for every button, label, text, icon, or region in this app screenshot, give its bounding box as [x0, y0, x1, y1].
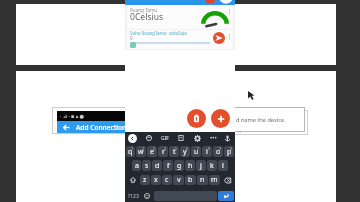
button[interactable]: o: [213, 146, 223, 157]
button[interactable]: Voice input: [222, 132, 232, 144]
staticText: y: [183, 147, 187, 157]
staticText: 2: [142, 146, 145, 151]
staticText: z: [143, 175, 147, 185]
button[interactable]: Temperature: [130, 42, 136, 48]
staticText: w: [138, 147, 144, 157]
staticText: e: [150, 147, 154, 157]
staticText: 9: [219, 146, 222, 151]
button[interactable]: x: [151, 175, 161, 185]
staticText: t: [173, 147, 176, 157]
staticText: 4: [164, 146, 167, 151]
button[interactable]: Shift: [126, 175, 139, 185]
staticText: 0Celsius: [130, 11, 164, 23]
staticText: 1: [131, 146, 134, 151]
button[interactable]: c: [162, 175, 172, 185]
button[interactable]: [189, 132, 205, 144]
staticText: v: [177, 175, 181, 185]
button[interactable]: k: [207, 160, 217, 171]
staticText: 0: [230, 146, 233, 151]
staticText: m: [211, 175, 218, 185]
button[interactable]: •••: [205, 132, 221, 144]
button[interactable]: GIF: [157, 132, 173, 144]
button[interactable]: z: [140, 175, 150, 185]
staticText: ⋅ ⊿ · ▪ ▴ ●: [60, 113, 84, 120]
staticText: ?123: [128, 193, 139, 200]
staticText: ..: [238, 127, 242, 135]
staticText: c: [165, 175, 169, 185]
other: Back: [63, 124, 70, 131]
staticText: Add Connection: [76, 123, 127, 132]
button[interactable]: Send: [213, 32, 225, 44]
staticText: k: [210, 161, 214, 171]
staticText: x: [154, 175, 158, 185]
staticText: u: [194, 147, 199, 157]
staticText: 3: [153, 146, 156, 151]
staticText: b: [188, 175, 193, 185]
button[interactable]: More options: [227, 7, 232, 16]
button[interactable]: [141, 132, 157, 144]
staticText: 7: [197, 146, 200, 151]
staticText: f: [167, 161, 170, 171]
staticText: j: [200, 161, 202, 171]
button[interactable]: h: [185, 160, 195, 171]
button[interactable]: q: [126, 146, 135, 157]
button[interactable]: y: [180, 146, 190, 157]
staticText: q: [128, 147, 133, 157]
button[interactable]: f: [163, 160, 173, 171]
staticText: o: [216, 147, 221, 157]
button[interactable]: i: [202, 146, 212, 157]
button[interactable]: b: [185, 175, 196, 185]
button[interactable]: Emoji: [141, 191, 153, 201]
staticText: s: [145, 161, 149, 171]
staticText: Suhu RuangTamu sukaSaja: [130, 30, 187, 36]
button[interactable]: e: [147, 146, 157, 157]
staticText: i: [206, 147, 208, 157]
button[interactable]: w: [136, 146, 146, 157]
staticText: g: [177, 161, 182, 171]
button[interactable]: More options: [227, 32, 232, 41]
button[interactable]: Delete: [187, 109, 206, 128]
button[interactable]: ?123: [126, 191, 140, 201]
button[interactable]: g: [174, 160, 184, 171]
button[interactable]: Back: [128, 134, 137, 143]
button[interactable]: s: [142, 160, 151, 171]
staticText: p: [227, 147, 232, 157]
button[interactable]: j: [196, 160, 206, 171]
button[interactable]: Backspace: [221, 175, 234, 185]
staticText: Ruang Tamu: [130, 7, 158, 13]
button[interactable]: l: [218, 160, 228, 171]
button[interactable]: Enter: [218, 191, 234, 201]
staticText: r: [162, 147, 165, 157]
button[interactable]: d: [152, 160, 162, 171]
staticText: d: [155, 161, 160, 171]
button[interactable]: [173, 132, 189, 144]
button[interactable]: m: [209, 175, 220, 185]
staticText: d name the device.: [236, 116, 286, 124]
button[interactable]: r: [158, 146, 168, 157]
staticText: n: [200, 175, 205, 185]
staticText: 0: [130, 35, 133, 41]
staticText: 6: [186, 146, 189, 151]
staticText: 8: [208, 146, 211, 151]
button[interactable]: u: [191, 146, 201, 157]
staticText: a: [135, 161, 139, 171]
button[interactable]: t: [169, 146, 179, 157]
button[interactable]: Ruang Tamu: [127, 5, 233, 29]
staticText: h: [188, 161, 193, 171]
button[interactable]: a: [132, 160, 141, 171]
staticText: 5: [175, 146, 178, 151]
button[interactable]: Back: [57, 121, 144, 134]
button[interactable]: n: [197, 175, 208, 185]
button[interactable]: v: [173, 175, 184, 185]
staticText: l: [222, 161, 224, 171]
button[interactable]: p: [224, 146, 234, 157]
staticText: •••: [210, 134, 217, 142]
button[interactable]: Add: [211, 109, 230, 128]
staticText: GIF: [161, 135, 169, 142]
